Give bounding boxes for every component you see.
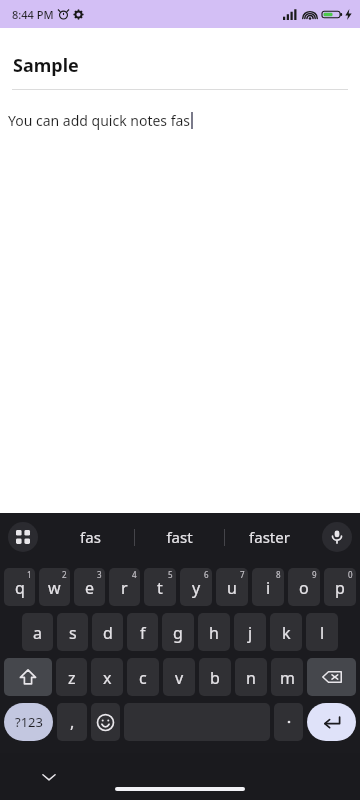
staticText: 5 xyxy=(168,569,173,580)
button[interactable]: Comma xyxy=(57,703,87,741)
staticText: f xyxy=(140,622,146,644)
staticText: g xyxy=(173,622,183,644)
staticText: 0 xyxy=(348,569,353,580)
staticText: p xyxy=(335,577,345,599)
button[interactable]: v xyxy=(163,658,195,696)
staticText: fas xyxy=(80,527,101,547)
button[interactable]: Keyboard toolbar xyxy=(8,522,38,552)
button[interactable]: r xyxy=(109,568,140,606)
button[interactable]: faster xyxy=(225,513,314,561)
staticText: y xyxy=(192,577,201,599)
staticText: m xyxy=(280,667,295,689)
button[interactable]: w xyxy=(39,568,70,606)
button[interactable]: You can add quick notes fas xyxy=(8,111,193,130)
staticText: x xyxy=(103,667,112,689)
button[interactable]: z xyxy=(56,658,87,696)
button[interactable]: Period xyxy=(274,703,303,741)
button[interactable]: ?123 xyxy=(4,703,53,741)
staticText: e xyxy=(85,577,95,599)
button[interactable]: h xyxy=(198,613,230,651)
staticText: q xyxy=(15,577,25,599)
staticText: l xyxy=(320,622,325,644)
staticText: v xyxy=(175,667,184,689)
staticText: k xyxy=(282,622,291,644)
button[interactable]: i xyxy=(252,568,284,606)
button[interactable]: b xyxy=(199,658,231,696)
button[interactable]: m xyxy=(271,658,303,696)
staticText: u xyxy=(227,577,237,599)
button[interactable]: n xyxy=(235,658,267,696)
button[interactable]: fas xyxy=(46,513,134,561)
button[interactable]: u xyxy=(216,568,248,606)
button[interactable]: c xyxy=(127,658,159,696)
staticText: 3 xyxy=(97,569,102,580)
button[interactable]: q xyxy=(4,568,35,606)
staticText: 4 xyxy=(132,569,137,580)
staticText: t xyxy=(157,577,163,599)
staticText: 8:44 PM xyxy=(12,7,54,22)
button[interactable]: y xyxy=(180,568,212,606)
staticText: c xyxy=(139,667,147,689)
button[interactable]: j xyxy=(234,613,266,651)
button[interactable]: Enter xyxy=(307,703,356,741)
staticText: 7 xyxy=(240,569,245,580)
staticText: You can add quick notes fas xyxy=(8,111,191,130)
button[interactable]: p xyxy=(324,568,356,606)
staticText: b xyxy=(210,667,220,689)
button[interactable]: d xyxy=(92,613,123,651)
button[interactable]: f xyxy=(127,613,158,651)
staticText: 8 xyxy=(276,569,281,580)
staticText: n xyxy=(246,667,256,689)
button[interactable]: Shift xyxy=(4,658,52,696)
button[interactable]: Voice input xyxy=(322,522,352,552)
staticText: 2 xyxy=(62,569,67,580)
button[interactable]: Backspace xyxy=(307,658,356,696)
staticText: w xyxy=(48,577,61,599)
button[interactable]: t xyxy=(144,568,176,606)
staticText: s xyxy=(69,622,77,644)
staticText: o xyxy=(299,577,309,599)
staticText: ?123 xyxy=(15,713,43,731)
button[interactable]: e xyxy=(74,568,105,606)
staticText: j xyxy=(248,622,253,644)
button[interactable]: l xyxy=(306,613,338,651)
staticText: 9 xyxy=(312,569,317,580)
button[interactable]: Hide keyboard xyxy=(34,762,64,792)
button[interactable]: s xyxy=(57,613,88,651)
staticText: h xyxy=(209,622,219,644)
staticText: i xyxy=(266,577,271,599)
button[interactable]: fast xyxy=(135,513,224,561)
staticText: r xyxy=(121,577,128,599)
staticText: d xyxy=(103,622,113,644)
button[interactable]: a xyxy=(22,613,53,651)
staticText: 1 xyxy=(27,569,32,580)
button[interactable]: Emoji xyxy=(91,703,120,741)
button[interactable]: o xyxy=(288,568,320,606)
staticText: faster xyxy=(249,527,290,547)
button[interactable]: Sample xyxy=(13,53,79,78)
button[interactable]: g xyxy=(162,613,194,651)
staticText: 6 xyxy=(204,569,209,580)
button[interactable]: k xyxy=(270,613,302,651)
staticText: z xyxy=(68,667,76,689)
staticText: , xyxy=(70,711,75,733)
button[interactable]: x xyxy=(91,658,123,696)
staticText: fast xyxy=(166,527,193,547)
staticText: a xyxy=(33,622,42,644)
